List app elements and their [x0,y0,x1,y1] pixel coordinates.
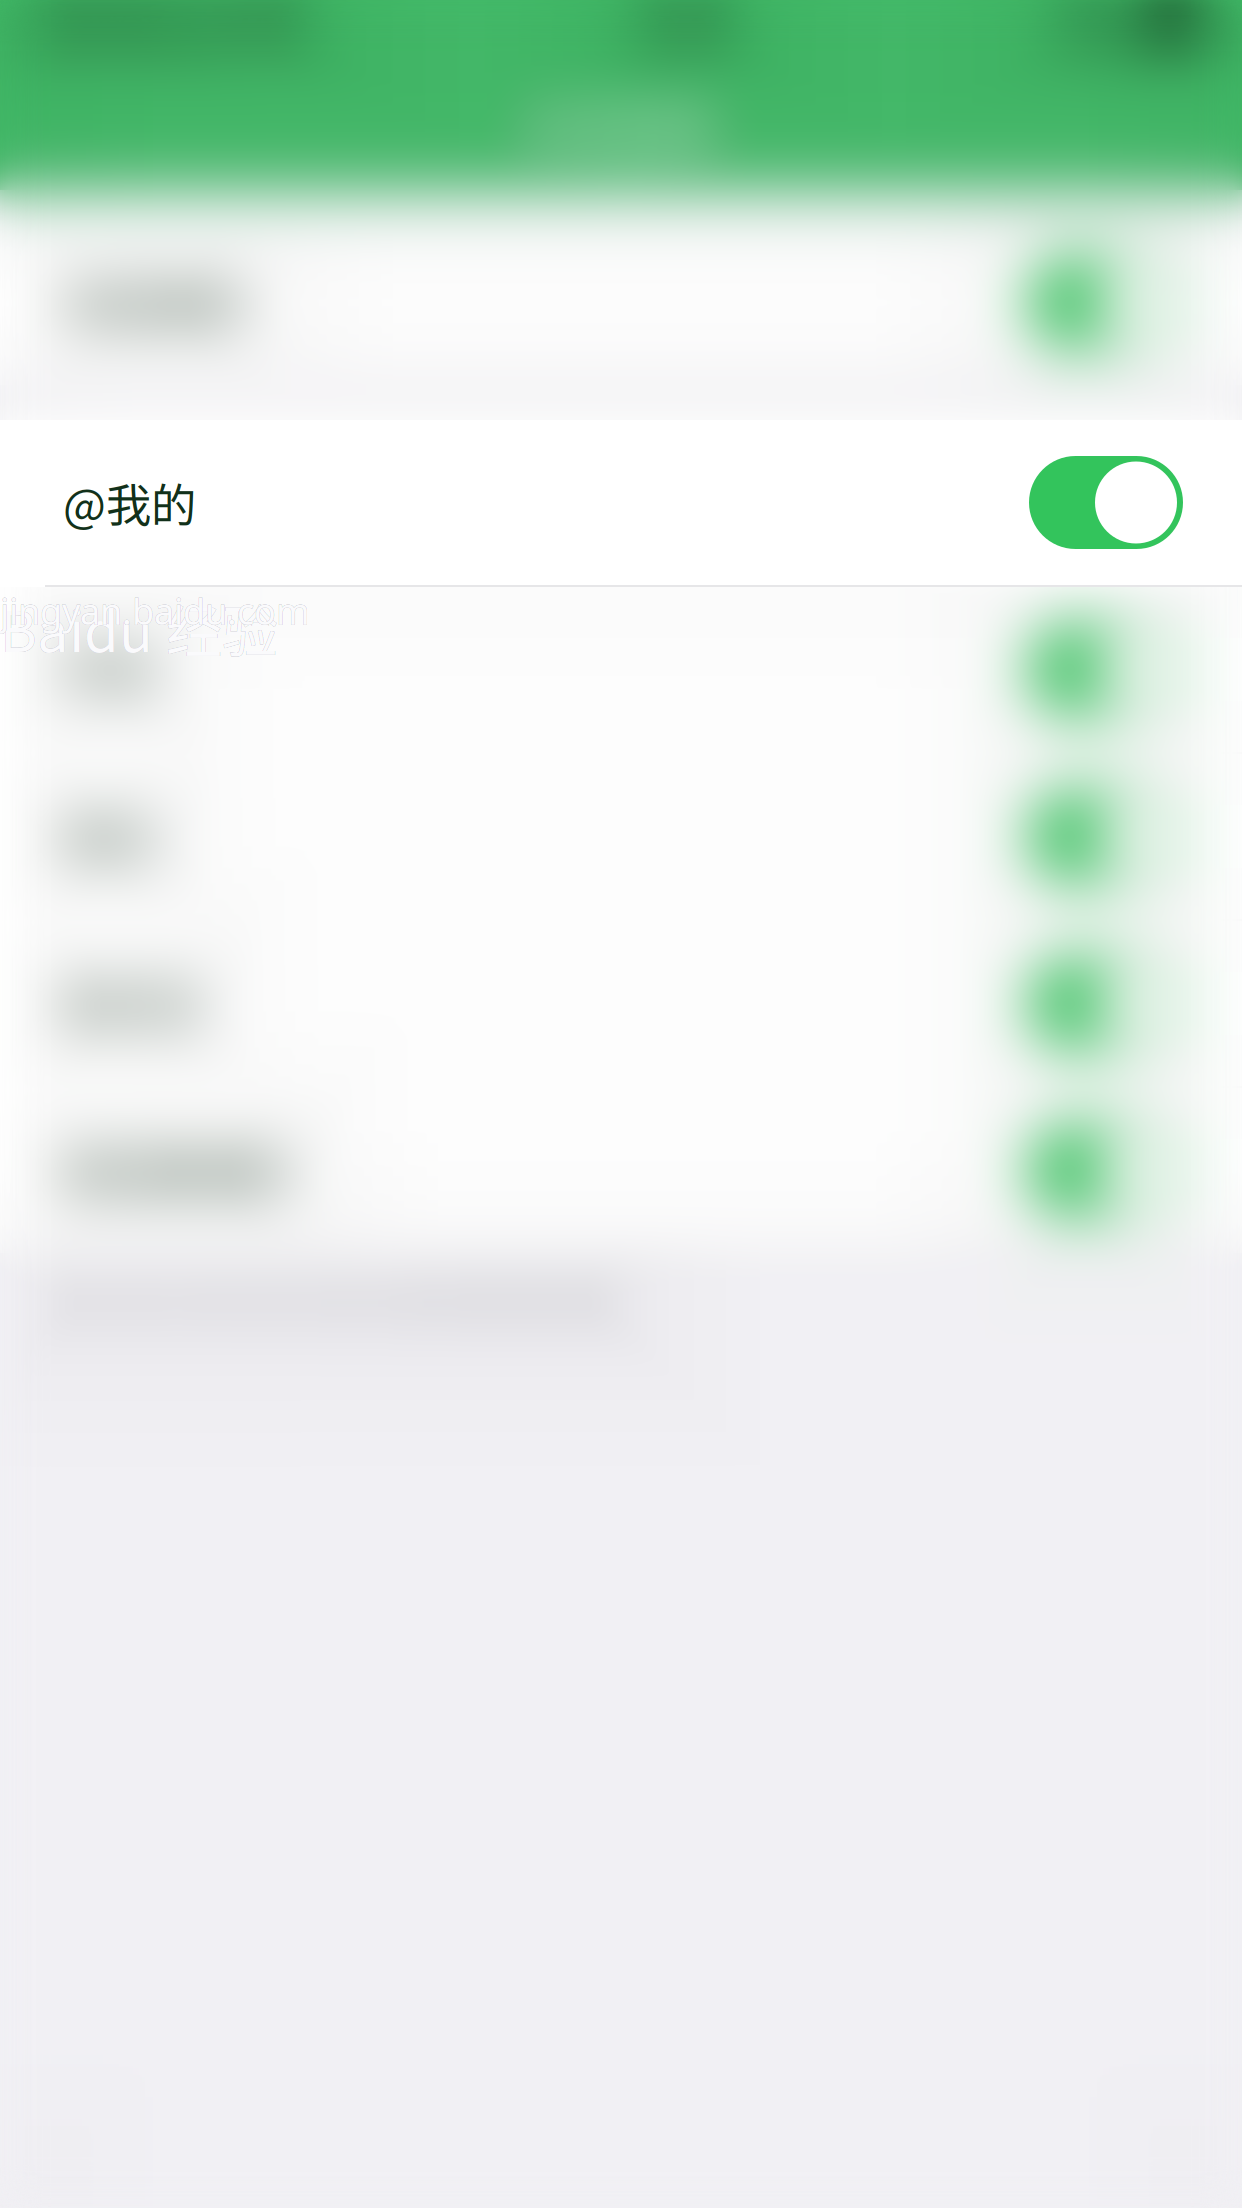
staticText: 10:09 [635,5,729,55]
button[interactable]: 声音 [0,587,1242,752]
staticText: 82% [1058,7,1128,53]
staticText: 朋友圈通知 [63,1138,288,1203]
staticText: @我的 [63,470,196,535]
button[interactable]: 消息通知 [0,220,1242,385]
staticText: 振动 [63,804,153,869]
button[interactable]: 提示音 [0,921,1242,1086]
staticText: WIFI [229,7,307,53]
staticText: 消息通知 [63,270,243,335]
button[interactable]: 振动 [0,754,1242,919]
staticText: 提示音 [63,971,198,1036]
button[interactable]: @我的 [0,420,1242,585]
staticText: 声音 [63,637,153,702]
button[interactable]: 朋友圈通知 [0,1088,1242,1253]
staticText: 中国联通 [26,5,166,55]
staticText: 新消息通知 [521,96,721,154]
